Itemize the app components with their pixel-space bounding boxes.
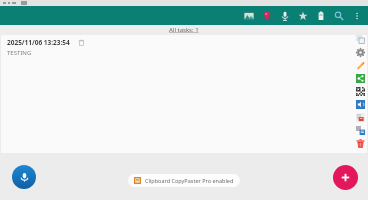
button[interactable]: Favorite <box>294 6 312 25</box>
button[interactable]: Settings <box>353 46 368 59</box>
button[interactable]: Highlight <box>353 59 368 72</box>
button[interactable]: QR code <box>353 85 368 98</box>
button[interactable]: Speak <box>353 98 368 111</box>
staticText: 2025/11/06 13:23:54 <box>7 38 70 47</box>
staticText: All tasks: 1 <box>169 26 199 34</box>
button[interactable]: All tasks: 1 <box>0 25 368 35</box>
button[interactable]: 2025/11/06 13:23:54 <box>1 35 367 153</box>
button[interactable]: Search <box>330 6 348 25</box>
button[interactable]: Record audio <box>276 6 294 25</box>
button[interactable]: Delete <box>353 137 368 150</box>
staticText: TESTING <box>7 49 32 57</box>
button[interactable]: Share <box>353 72 368 85</box>
button[interactable]: Paste <box>353 111 368 124</box>
button[interactable]: Delete task <box>77 38 86 47</box>
button[interactable]: Location <box>258 6 276 25</box>
button[interactable]: Voice input <box>12 165 36 189</box>
button[interactable]: Clipboard <box>312 6 330 25</box>
button[interactable]: Add task <box>333 165 358 190</box>
button[interactable]: More options <box>348 6 366 25</box>
button[interactable]: Insert image <box>240 6 258 25</box>
button[interactable]: Copy <box>353 33 368 46</box>
button[interactable]: Translate <box>353 124 368 137</box>
staticText: Clipboard CopyPaster Pro enabled <box>145 177 234 184</box>
